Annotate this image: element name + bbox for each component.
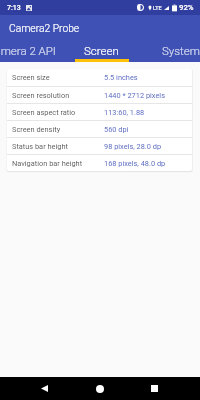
staticText: Screen aspect ratio [12,108,76,117]
staticText: Camera 2 API [0,44,56,57]
staticText: Screen [84,44,119,57]
button[interactable]: Screen [62,38,141,62]
staticText: Screen resolution [12,91,70,100]
staticText: System [162,44,200,57]
button[interactable]: Home [85,377,115,400]
button[interactable]: Back [29,377,59,400]
staticText: Screen density [12,125,61,134]
staticText: 98 pixels, 28.0 dp [104,142,162,151]
button[interactable]: Screen resolution [7,87,192,103]
staticText: 5.5 inches [104,73,138,82]
staticText: 113:60, 1.88 [104,108,145,117]
button[interactable]: Screen density [7,121,192,137]
staticText: 92% [179,3,194,12]
staticText: 1440 * 2712 pixels [104,91,165,100]
button[interactable]: Screen aspect ratio [7,104,192,120]
staticText: 560 dpi [104,125,129,134]
staticText: Screen size [12,73,50,82]
button[interactable]: Camera 2 API [0,38,62,62]
button[interactable]: Recent apps [139,377,169,400]
button[interactable]: Navigation bar height [7,155,192,171]
staticText: LTE [153,5,162,11]
staticText: Status bar height [12,142,68,151]
staticText: Camera2 Probe [9,22,80,34]
button[interactable]: Status bar height [7,138,192,154]
staticText: 168 pixels, 48.0 dp [104,159,166,168]
button[interactable]: Screen size [7,69,192,86]
button[interactable]: System [141,38,200,62]
staticText: 7:13 [7,4,21,12]
staticText: Navigation bar height [12,159,83,168]
